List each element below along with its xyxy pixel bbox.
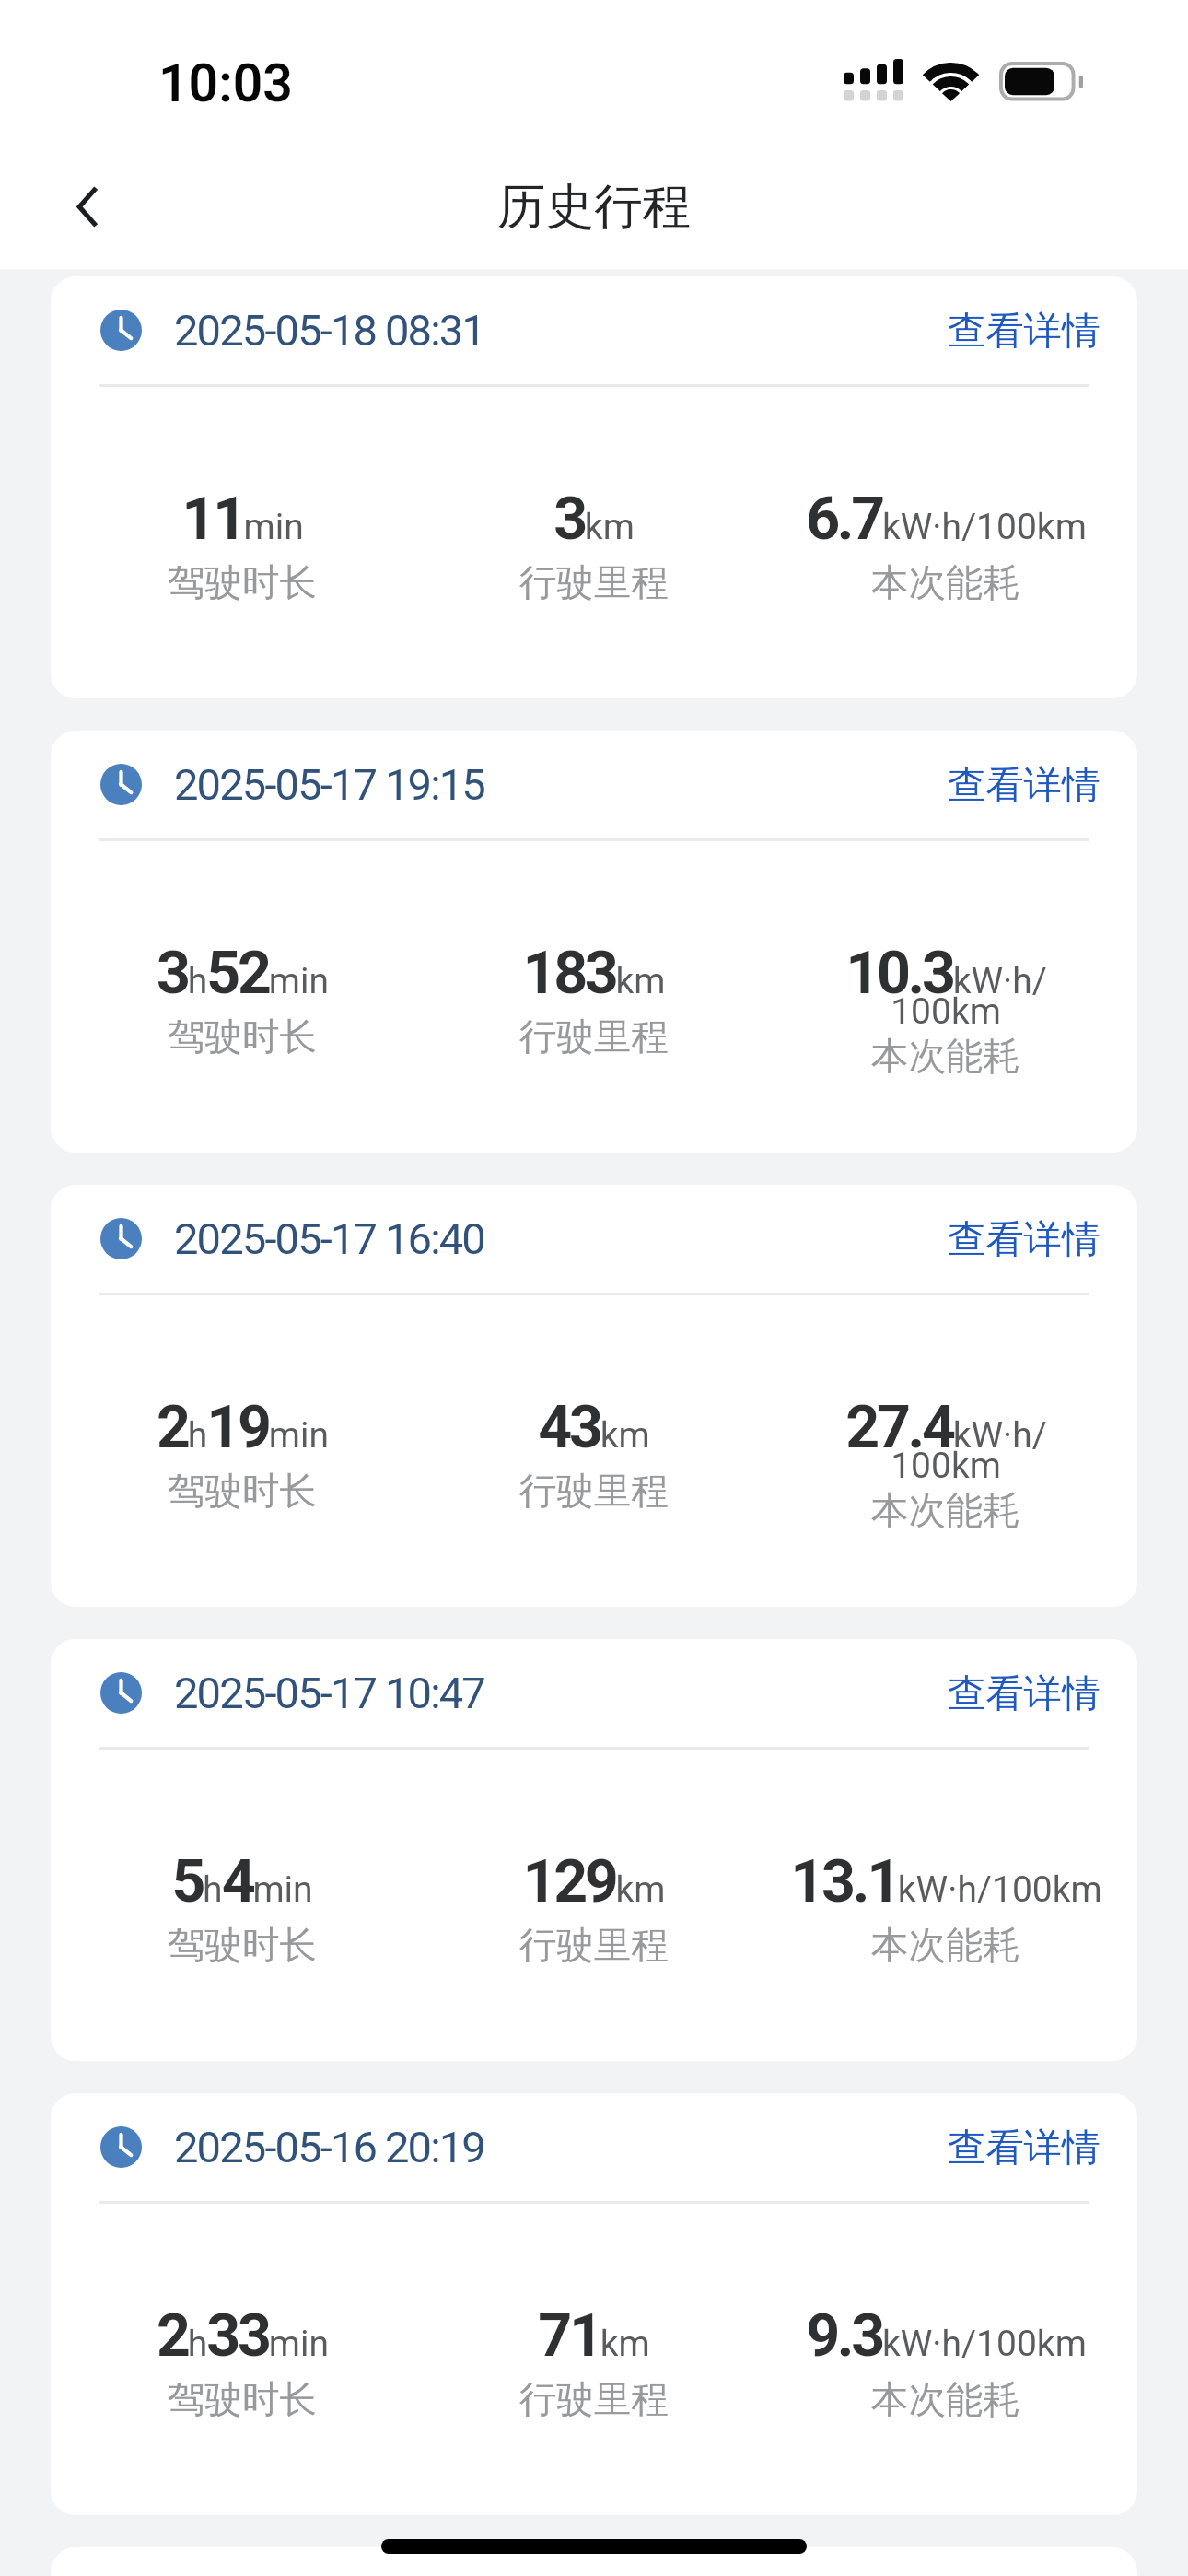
staticText: 行驶里程 (519, 1013, 669, 1060)
staticText: 3h52min (157, 938, 329, 1008)
staticText: 2025-05-17 16:40 (174, 1213, 484, 1264)
staticText: 100km (891, 990, 1001, 1033)
staticText: 查看详情 (948, 761, 1101, 809)
staticText: 本次能耗 (871, 2376, 1020, 2423)
staticText: 11min (181, 484, 304, 554)
staticText: 查看详情 (948, 1215, 1101, 1263)
staticText: 100km (891, 1445, 1001, 1487)
staticText: 2h33min (157, 2301, 329, 2371)
staticText: 行驶里程 (519, 1922, 669, 1969)
staticText: 驾驶时长 (168, 1922, 317, 1969)
button[interactable]: 查看详情 (914, 1185, 1101, 1293)
staticText: 3km (553, 484, 635, 554)
staticText: 行驶里程 (519, 2376, 669, 2423)
staticText: 10:03 (158, 53, 293, 114)
staticText: 驾驶时长 (168, 559, 317, 606)
staticText: 5h4min (171, 1846, 313, 1916)
button[interactable]: 2025-05-17 16:40 (51, 1185, 1137, 1607)
button[interactable]: 2025-05-17 19:15 (51, 731, 1137, 1153)
button[interactable]: 2025-05-17 10:47 (51, 1639, 1137, 2061)
staticText: 2025-05-17 10:47 (174, 1668, 484, 1718)
staticText: 27.4kW·h/ (845, 1392, 1047, 1462)
staticText: 183km (522, 938, 666, 1008)
staticText: 驾驶时长 (168, 1013, 317, 1060)
button[interactable]: 查看详情 (914, 2093, 1101, 2201)
staticText: 10.3kW·h/ (845, 938, 1047, 1008)
button[interactable]: Back (23, 144, 150, 269)
staticText: 行驶里程 (519, 1468, 669, 1515)
button[interactable]: 2025-05-16 20:19 (51, 2093, 1137, 2515)
staticText: 本次能耗 (871, 559, 1020, 606)
staticText: 2h19min (157, 1392, 329, 1462)
staticText: 2025-05-17 19:15 (174, 759, 484, 810)
staticText: 驾驶时长 (168, 1468, 317, 1515)
staticText: 查看详情 (948, 2124, 1101, 2172)
staticText: 2025-05-16 20:19 (174, 2122, 484, 2172)
button[interactable]: 查看详情 (914, 731, 1101, 838)
staticText: 71km (538, 2301, 650, 2371)
staticText: 2025-05-18 08:31 (174, 305, 484, 356)
staticText: 驾驶时长 (168, 2376, 317, 2423)
staticText: 129km (522, 1846, 666, 1916)
staticText: 13.1kW·h/100km (790, 1846, 1102, 1916)
staticText: 查看详情 (948, 1669, 1101, 1717)
staticText: 历史行程 (497, 176, 691, 237)
staticText: 6.7kW·h/100km (806, 484, 1087, 554)
staticText: 43km (538, 1392, 650, 1462)
staticText: 本次能耗 (871, 1487, 1020, 1534)
staticText: 行驶里程 (519, 559, 669, 606)
staticText: 本次能耗 (871, 1033, 1020, 1080)
staticText: 查看详情 (948, 307, 1101, 355)
button[interactable]: 2025-05-18 08:31 (51, 276, 1137, 698)
button[interactable]: 查看详情 (914, 1639, 1101, 1747)
button[interactable]: 查看详情 (914, 276, 1101, 384)
button[interactable]: 2025-05-16 08:02 (51, 2547, 1137, 2576)
staticText: 本次能耗 (871, 1922, 1020, 1969)
staticText: 9.3kW·h/100km (806, 2301, 1087, 2371)
